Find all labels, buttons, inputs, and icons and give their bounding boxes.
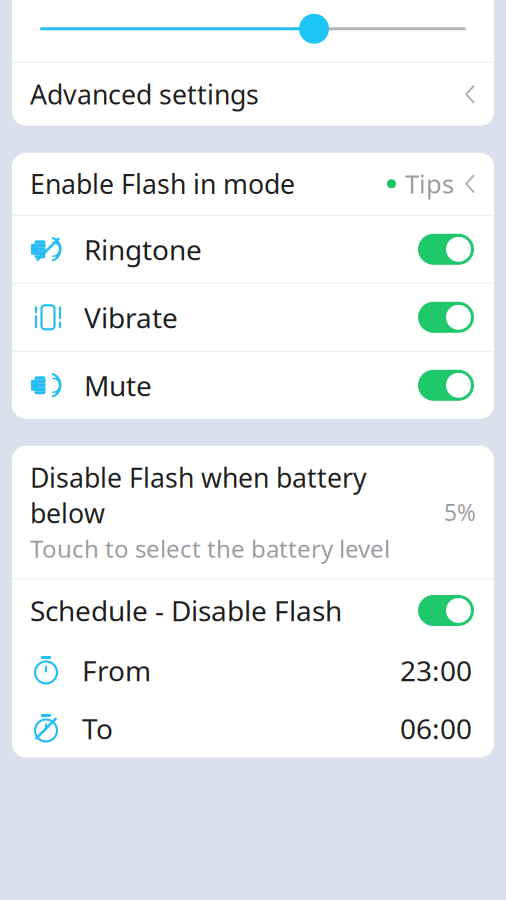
button[interactable]: Schedule - Disable Flash [12,579,494,641]
staticText: 5% [444,497,476,527]
button[interactable]: From [12,641,494,699]
staticText: Enable Flash in mode [30,166,295,201]
staticText: Tips [405,167,454,200]
staticText: From [82,652,151,689]
staticText: 23:00 [400,652,472,689]
button[interactable]: To [12,699,494,757]
button[interactable]: Vibrate [12,284,494,351]
staticText: Disable Flash when battery below [30,460,367,531]
button[interactable]: Advanced settings [12,63,494,126]
staticText: Mute [84,367,152,404]
staticText: To [82,710,113,747]
button[interactable]: Enable Flash in mode [12,153,494,215]
staticText: Schedule - Disable Flash [30,592,342,629]
button[interactable]: Mute [12,352,494,419]
staticText: Advanced settings [30,77,259,112]
button[interactable]: Ringtone [12,216,494,283]
staticText: 06:00 [400,710,472,747]
staticText: Touch to select the battery level [30,533,390,564]
staticText: Vibrate [84,299,178,336]
button[interactable]: Disable Flash when battery below [12,446,494,578]
staticText: Ringtone [84,231,202,268]
